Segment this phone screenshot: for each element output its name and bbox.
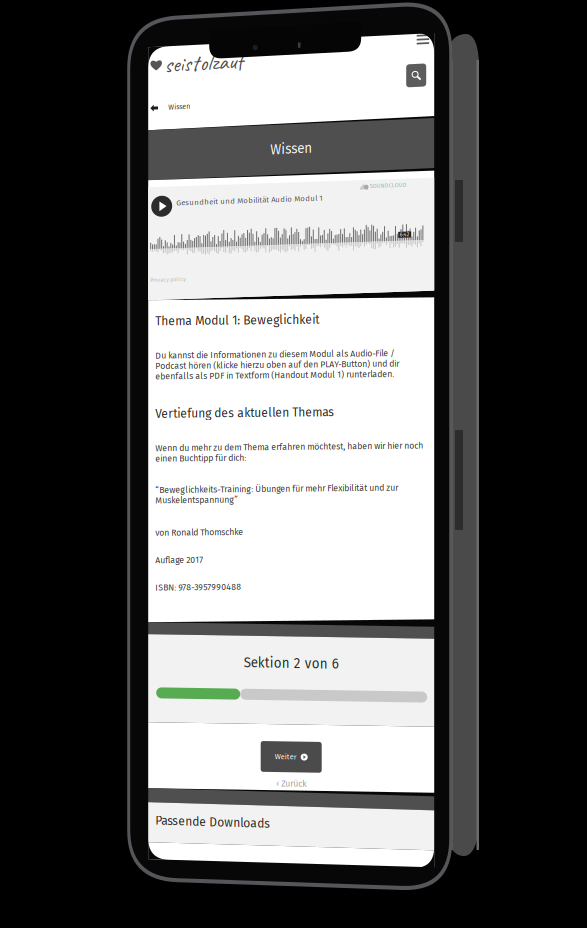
staticText: Thema Modul 1: Beweglichkeit bbox=[155, 314, 319, 329]
staticText: Passende Downloads bbox=[155, 813, 270, 828]
staticText: Wenn du mehr zu dem Thema erfahren möcht… bbox=[155, 443, 423, 464]
button[interactable]: Search bbox=[406, 77, 426, 100]
staticText: ‹ Zurück bbox=[276, 776, 306, 787]
staticText: seistolzauf bbox=[164, 51, 243, 80]
staticText: ISBN: 978-3957990488 bbox=[155, 583, 241, 593]
staticText: von Ronald Thomschke bbox=[155, 528, 243, 538]
button[interactable]: Weiter bbox=[261, 739, 322, 770]
staticText: 6:42 bbox=[400, 240, 410, 246]
staticText: Wissen bbox=[270, 147, 312, 163]
staticText: Weiter bbox=[275, 750, 297, 759]
staticText: Vertiefung des aktuellen Themas bbox=[155, 407, 334, 421]
staticText: Privacy policy bbox=[150, 277, 186, 284]
staticText: Auflage 2017 bbox=[155, 555, 203, 566]
staticText: Du kannst die Informationen zu diesem Mo… bbox=[155, 351, 399, 382]
staticText: Gesundheit und Mobilität Audio Modul 1 bbox=[176, 199, 322, 208]
staticText: Sektion 2 von 6 bbox=[244, 653, 339, 669]
button[interactable]: Menu bbox=[412, 43, 434, 63]
staticText: “Beweglichkeits-Training: Übungen für me… bbox=[155, 485, 398, 506]
button[interactable]: Wissen bbox=[150, 101, 190, 115]
staticText: Wissen bbox=[168, 104, 190, 112]
button[interactable]: ‹ Zurück bbox=[273, 773, 309, 790]
